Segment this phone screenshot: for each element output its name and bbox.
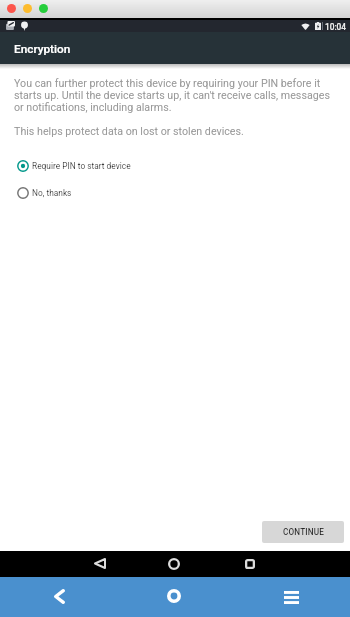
button[interactable]: CONTINUE — [262, 521, 344, 543]
staticText: Encryption — [14, 42, 71, 56]
button[interactable]: No, thanks — [0, 183, 350, 203]
staticText: This helps protect data on lost or stole… — [14, 125, 336, 138]
button[interactable]: Require PIN to start device — [0, 156, 350, 176]
button[interactable]: Maximize window — [39, 4, 48, 13]
staticText: No, thanks — [32, 188, 72, 198]
button[interactable]: Back — [86, 550, 114, 577]
staticText: 10:04 — [325, 22, 347, 32]
staticText: You can further protect this device by r… — [14, 77, 336, 113]
button[interactable]: Minimize window — [23, 4, 32, 13]
staticText: CONTINUE — [283, 527, 324, 537]
button[interactable]: Close window — [7, 4, 16, 13]
button[interactable]: Home — [157, 576, 191, 616]
button[interactable]: Menu — [274, 577, 308, 617]
button[interactable]: Back — [42, 576, 76, 616]
staticText: Require PIN to start device — [32, 161, 131, 171]
button[interactable]: Recent apps — [236, 550, 264, 577]
button[interactable]: Home — [160, 550, 188, 577]
